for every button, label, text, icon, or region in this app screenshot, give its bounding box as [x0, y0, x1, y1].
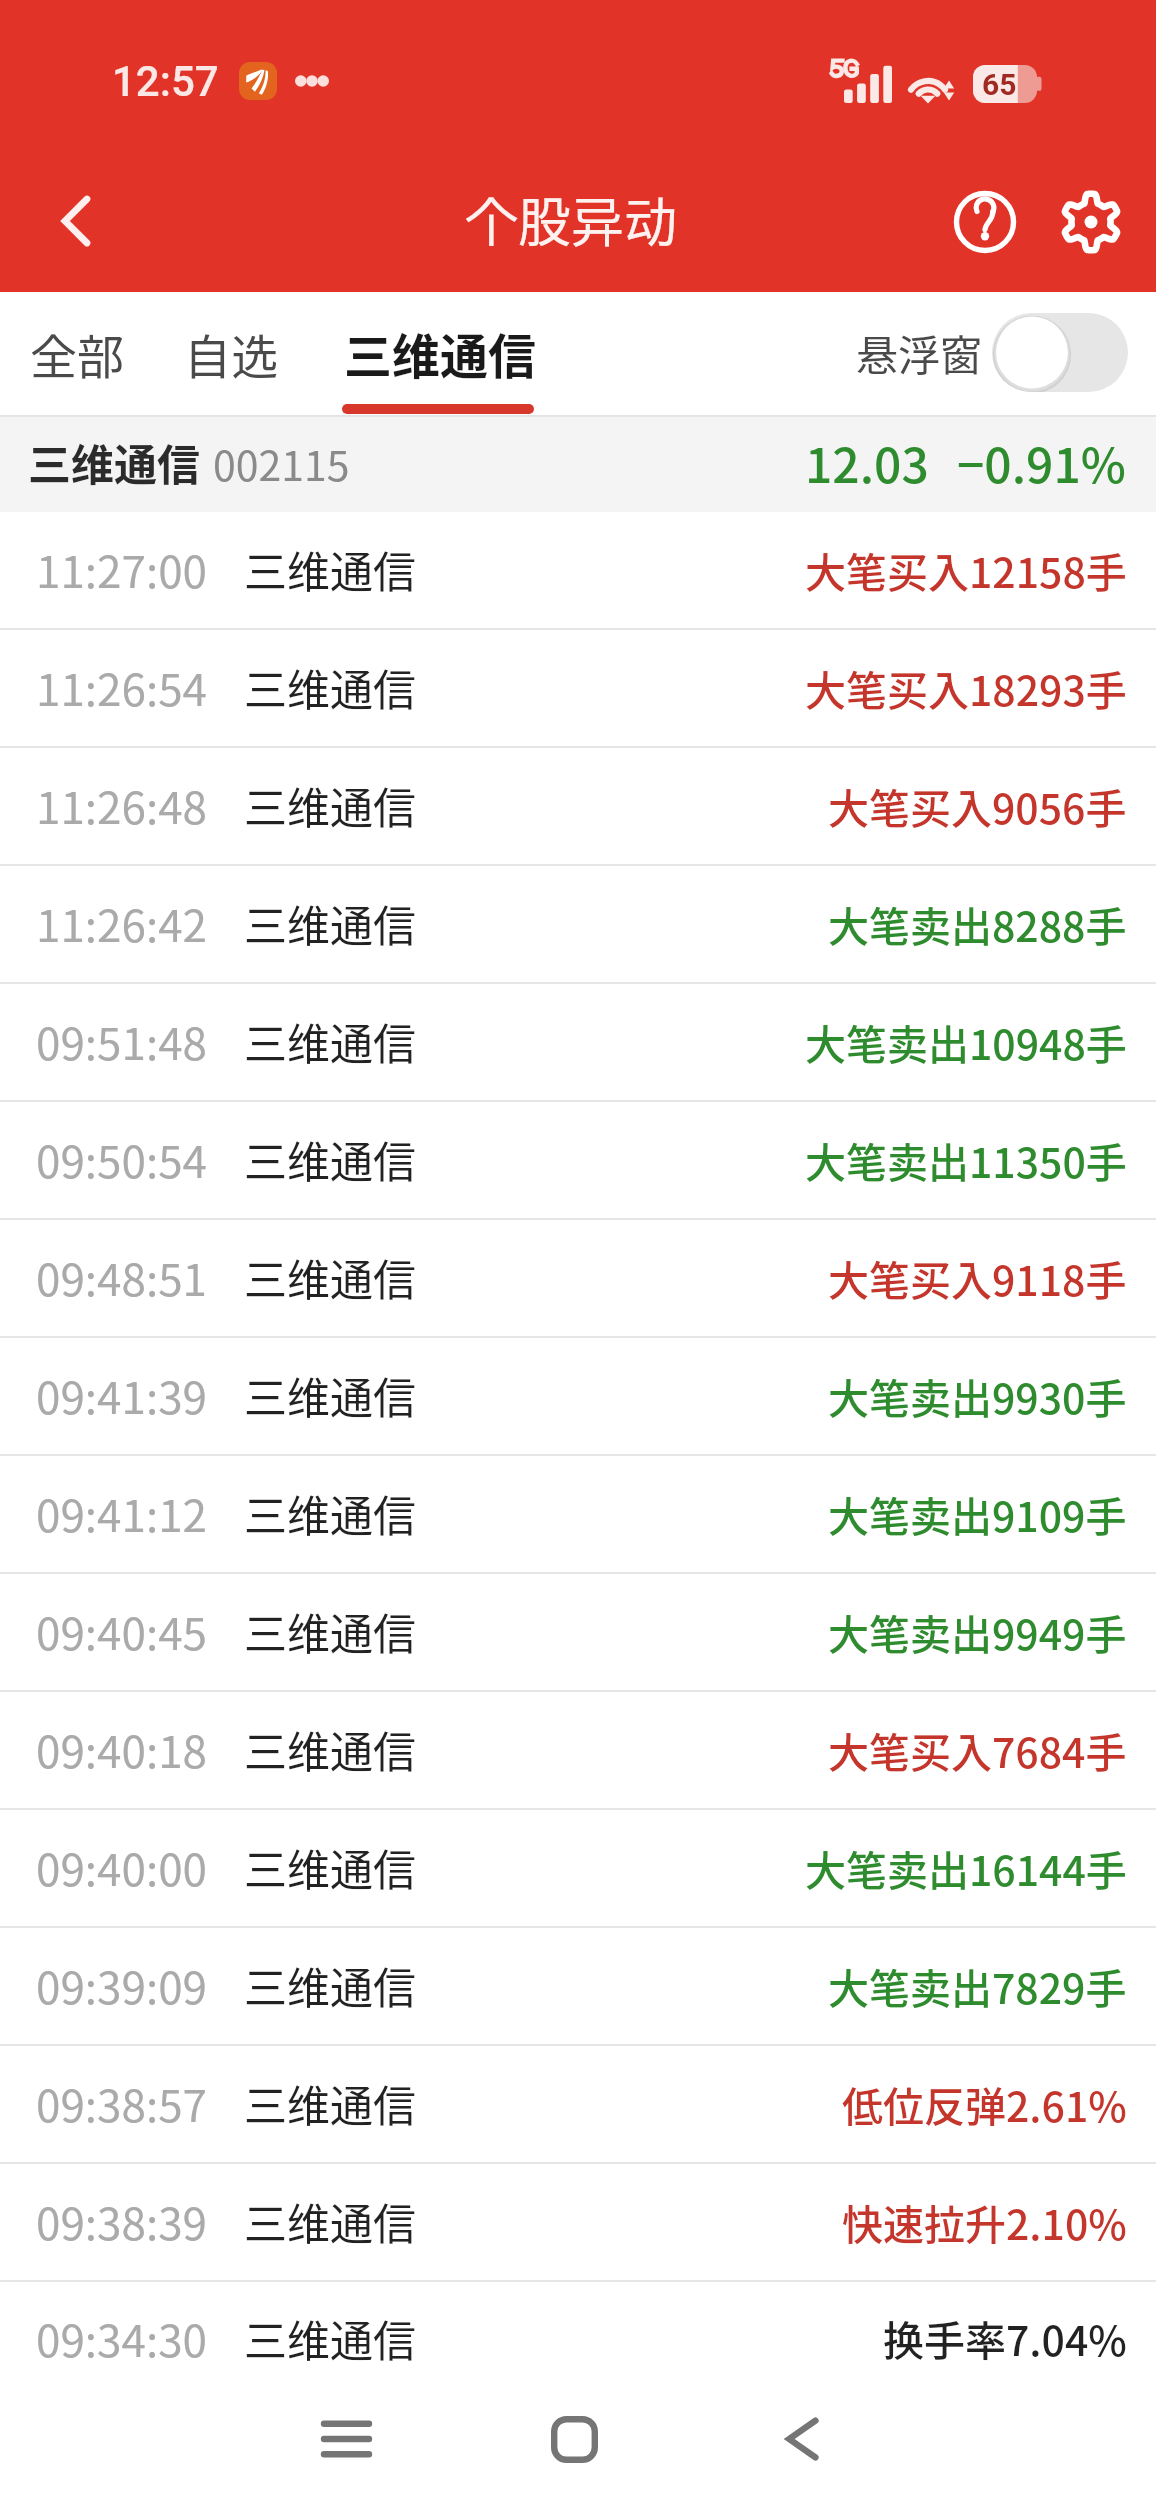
button[interactable]: 11:26:48 [0, 748, 1156, 864]
button[interactable]: 09:41:39 [0, 1338, 1156, 1454]
button[interactable]: 三维通信 [0, 417, 1156, 512]
staticText: 大笔卖出9949手 [828, 1602, 1127, 1661]
staticText: 11:27:00 [36, 537, 207, 601]
button[interactable]: 11:26:54 [0, 630, 1156, 746]
staticText: 大笔买入7684手 [828, 1720, 1127, 1779]
staticText: 低位反弹2.61% [842, 2074, 1127, 2133]
staticText: 大笔买入18293手 [805, 658, 1127, 717]
button[interactable]: 09:34:30 [0, 2282, 1156, 2395]
button[interactable]: Home [484, 2395, 664, 2483]
staticText: 三维通信 [244, 774, 416, 836]
button[interactable]: 自选 [178, 305, 284, 401]
staticText: 三维通信 [344, 318, 537, 388]
staticText: 09:38:57 [36, 2071, 207, 2135]
button[interactable]: Help [943, 179, 1048, 265]
staticText: 09:41:39 [36, 1363, 207, 1427]
staticText: 09:51:48 [36, 1009, 207, 1073]
staticText: 09:34:30 [36, 2306, 207, 2370]
staticText: 大笔卖出7829手 [828, 1956, 1127, 2015]
button[interactable]: 09:38:39 [0, 2164, 1156, 2280]
staticText: 大笔卖出8288手 [828, 894, 1127, 953]
staticText: 09:39:09 [36, 1953, 207, 2017]
staticText: 自选 [184, 319, 278, 387]
staticText: 三维通信 [244, 1836, 416, 1898]
staticText: 个股异动 [465, 181, 677, 258]
button[interactable]: 09:39:09 [0, 1928, 1156, 2044]
button[interactable]: Back [712, 2395, 892, 2483]
button[interactable]: Recent apps [256, 2395, 436, 2483]
button[interactable]: 全部 [24, 305, 130, 401]
staticText: 大笔买入9056手 [828, 776, 1127, 835]
button[interactable]: 三维通信 [338, 304, 543, 402]
staticText: 09:50:54 [36, 1127, 207, 1191]
button[interactable]: 09:41:12 [0, 1456, 1156, 1572]
button[interactable]: 11:27:00 [0, 512, 1156, 628]
staticText: 三维通信 [244, 1600, 416, 1662]
staticText: 大笔卖出9930手 [828, 1366, 1127, 1425]
staticText: 三维通信 [244, 892, 416, 954]
staticText: 大笔买入9118手 [828, 1248, 1127, 1307]
button[interactable]: 悬浮窗 [856, 313, 1156, 392]
staticText: 09:41:12 [36, 1481, 207, 1545]
staticText: 09:40:18 [36, 1717, 207, 1781]
button[interactable]: 09:40:18 [0, 1692, 1156, 1808]
staticText: 11:26:54 [36, 655, 207, 719]
staticText: 三维通信 [244, 1010, 416, 1072]
staticText: 三维通信 [244, 538, 416, 600]
staticText: 大笔卖出10948手 [805, 1012, 1127, 1071]
staticText: 全部 [30, 319, 124, 387]
staticText: 11:26:42 [36, 891, 207, 955]
staticText: 09:48:51 [36, 1245, 207, 1309]
staticText: 换手率7.04% [883, 2308, 1127, 2367]
staticText: 三维通信 [244, 2307, 416, 2369]
staticText: 三维通信 [244, 1364, 416, 1426]
staticText: 快速拉升2.10% [842, 2192, 1127, 2251]
staticText: 12:57 [112, 57, 219, 106]
button[interactable]: 09:40:45 [0, 1574, 1156, 1690]
staticText: 三维通信 [244, 1954, 416, 2016]
staticText: 三维通信 [244, 1718, 416, 1780]
button[interactable]: 09:50:54 [0, 1102, 1156, 1218]
button[interactable]: Settings [1048, 179, 1134, 265]
button[interactable]: 09:48:51 [0, 1220, 1156, 1336]
staticText: 大笔卖出9109手 [828, 1484, 1127, 1543]
staticText: 09:40:00 [36, 1835, 207, 1899]
staticText: 大笔买入12158手 [805, 540, 1127, 599]
staticText: 12.03 [805, 427, 929, 497]
button[interactable]: 09:40:00 [0, 1810, 1156, 1926]
staticText: 三维通信 [244, 1482, 416, 1544]
staticText: 悬浮窗 [856, 322, 983, 383]
staticText: 大笔卖出11350手 [805, 1130, 1127, 1189]
staticText: 三维通信 [244, 2072, 416, 2134]
button[interactable]: Back [12, 157, 140, 285]
staticText: 09:38:39 [36, 2189, 207, 2253]
staticText: 三维通信 [244, 656, 416, 718]
staticText: 三维通信 [244, 1246, 416, 1308]
staticText: −0.91% [957, 427, 1126, 497]
button[interactable]: 09:38:57 [0, 2046, 1156, 2162]
staticText: 三维通信 [244, 1128, 416, 1190]
staticText: 大笔卖出16144手 [805, 1838, 1127, 1897]
staticText: 002115 [213, 433, 350, 492]
staticText: 65 [982, 67, 1017, 102]
button[interactable]: 11:26:42 [0, 866, 1156, 982]
button[interactable]: 09:51:48 [0, 984, 1156, 1100]
staticText: 11:26:48 [36, 773, 207, 837]
staticText: 09:40:45 [36, 1599, 207, 1663]
staticText: 三维通信 [244, 2190, 416, 2252]
staticText: 三维通信 [28, 431, 200, 493]
